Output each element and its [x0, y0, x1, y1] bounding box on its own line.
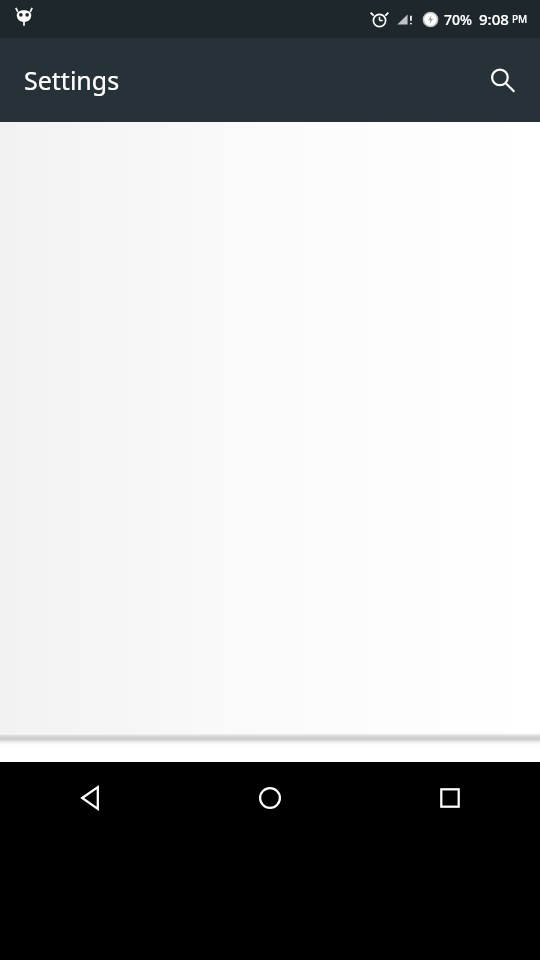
staticText: 70% — [444, 10, 472, 29]
button[interactable]: Back — [0, 762, 180, 834]
staticText: PM — [512, 12, 528, 26]
button[interactable]: Mobile networks — [0, 400, 540, 508]
staticText: 9:08 — [479, 9, 509, 29]
button[interactable]: Recent apps — [360, 762, 540, 834]
button[interactable]: Bluetooth — [0, 292, 540, 400]
button[interactable]: Data usage — [0, 508, 540, 616]
staticText: Settings — [24, 63, 120, 97]
button[interactable]: Wi-Fi — [0, 184, 540, 292]
button[interactable]: Search — [478, 56, 526, 104]
button[interactable]: Home — [180, 762, 360, 834]
button[interactable]: More — [0, 616, 540, 724]
